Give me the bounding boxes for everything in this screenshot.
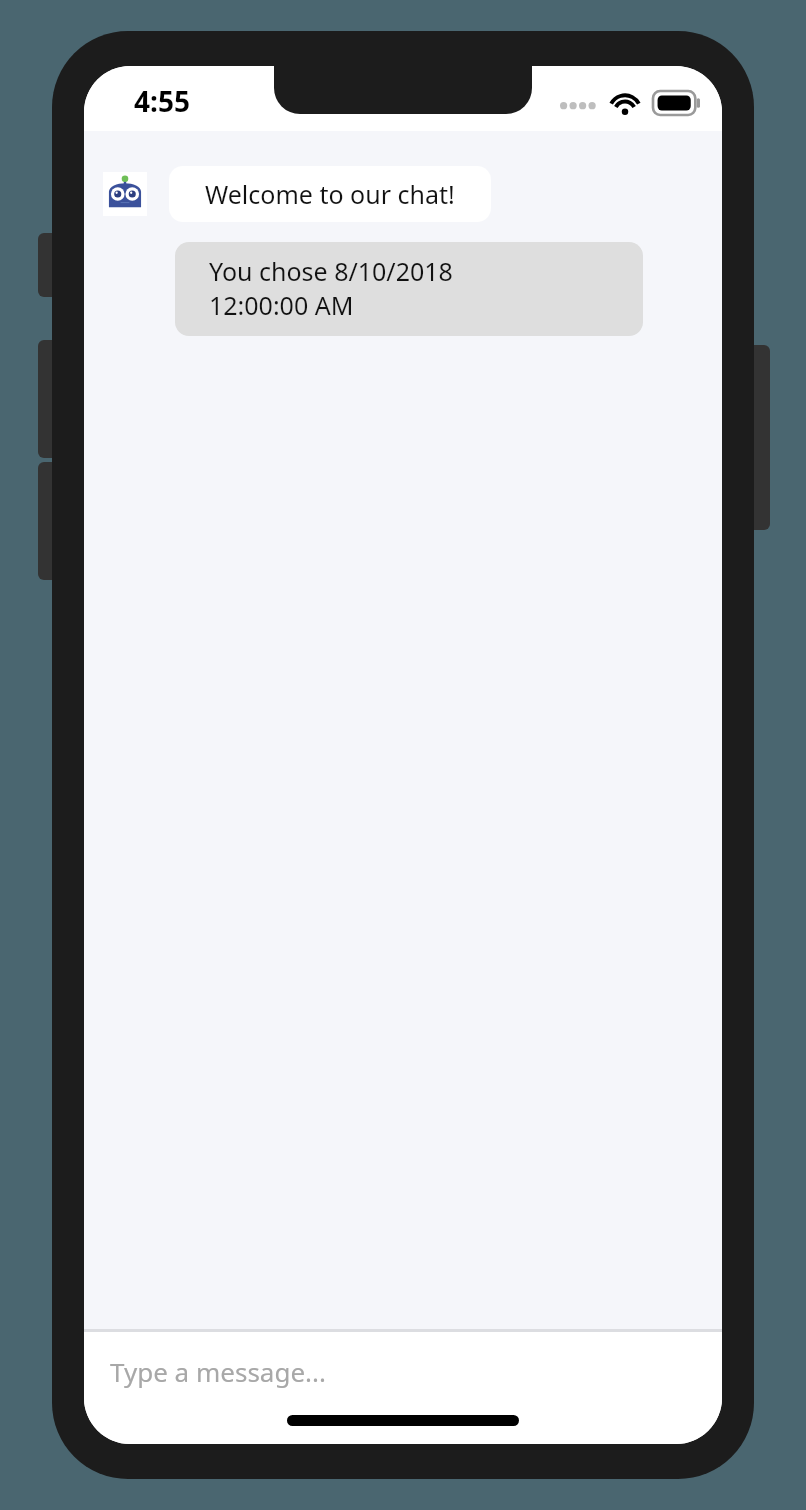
button[interactable]: Welcome to our chat! — [169, 166, 491, 222]
button[interactable]: Type a message... — [84, 1332, 722, 1444]
staticText: 4:55 — [134, 82, 190, 120]
other: Chat bot avatar — [103, 172, 147, 216]
button[interactable]: You chose 8/10/2018 12:00:00 AM — [175, 242, 643, 336]
staticText: Welcome to our chat! — [205, 177, 455, 211]
staticText: Type a message... — [110, 1354, 326, 1389]
staticText: You chose 8/10/2018 12:00:00 AM — [209, 254, 453, 322]
